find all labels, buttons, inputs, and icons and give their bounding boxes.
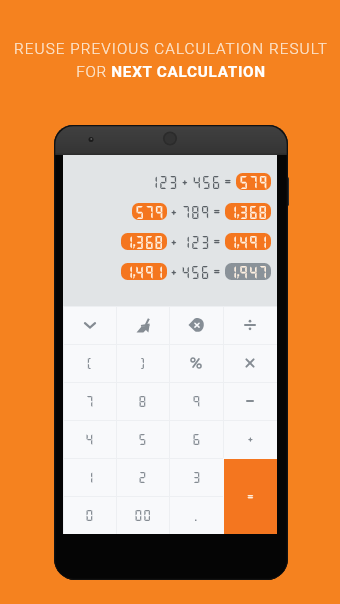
staticText: 6 [192, 432, 201, 446]
staticText: FOR NEXT CALCULATION [76, 63, 266, 81]
button[interactable]: 4 [63, 420, 116, 458]
staticText: + [180, 174, 190, 189]
staticText: 0 [85, 508, 94, 522]
staticText: + [169, 204, 179, 219]
staticText: 456 [192, 174, 221, 189]
button[interactable]: Minus [223, 382, 277, 420]
button[interactable]: Percent [169, 344, 223, 382]
staticText: = [246, 490, 255, 504]
staticText: + [246, 432, 255, 446]
button[interactable]: 7 [63, 382, 116, 420]
staticText: = [212, 234, 222, 249]
button[interactable]: ( [63, 344, 116, 382]
staticText: 00 [134, 508, 152, 522]
button[interactable]: 2 [116, 458, 169, 496]
staticText: ( [85, 356, 94, 370]
staticText: 579 [239, 174, 268, 189]
button[interactable]: Clear all [116, 306, 169, 344]
button[interactable]: . [169, 496, 223, 534]
button[interactable]: Divide [223, 306, 277, 344]
button[interactable]: Equals [224, 459, 277, 534]
staticText: 123 [181, 234, 210, 249]
staticText: = [212, 264, 222, 279]
button[interactable]: Backspace [169, 306, 223, 344]
button[interactable]: 00 [116, 496, 169, 534]
staticText: = [212, 204, 222, 219]
button[interactable]: 6 [169, 420, 223, 458]
staticText: 9 [192, 394, 201, 408]
staticText: 4 [85, 432, 94, 446]
button[interactable]: Plus [223, 420, 277, 458]
button[interactable]: 3 [169, 458, 223, 496]
button[interactable]: 9 [169, 382, 223, 420]
staticText: . [195, 508, 197, 522]
button[interactable]: 5 [116, 420, 169, 458]
staticText: 7 [85, 394, 94, 408]
staticText: + [169, 264, 179, 279]
button[interactable]: Multiply [223, 344, 277, 382]
button[interactable]: 0 [63, 496, 116, 534]
staticText: 8 [138, 394, 147, 408]
staticText: 1,491 [228, 234, 268, 249]
button[interactable]: ) [116, 344, 169, 382]
staticText: 1,491 [124, 264, 164, 279]
staticText: 1 [85, 470, 94, 484]
button[interactable]: 8 [116, 382, 169, 420]
staticText: 789 [181, 204, 210, 219]
staticText: 123 [149, 174, 178, 189]
staticText: 579 [135, 204, 164, 219]
staticText: 2 [138, 470, 147, 484]
staticText: = [223, 174, 233, 189]
staticText: ) [138, 356, 147, 370]
staticText: 1,368 [124, 234, 164, 249]
staticText: 1,368 [228, 204, 268, 219]
button[interactable]: 1 [63, 458, 116, 496]
staticText: + [169, 234, 179, 249]
staticText: REUSE PREVIOUS CALCULATION RESULT [14, 40, 328, 58]
staticText: 3 [192, 470, 201, 484]
staticText: 456 [181, 264, 210, 279]
staticText: 5 [138, 432, 147, 446]
button[interactable]: Collapse [63, 306, 116, 344]
staticText: 1,947 [228, 264, 268, 279]
